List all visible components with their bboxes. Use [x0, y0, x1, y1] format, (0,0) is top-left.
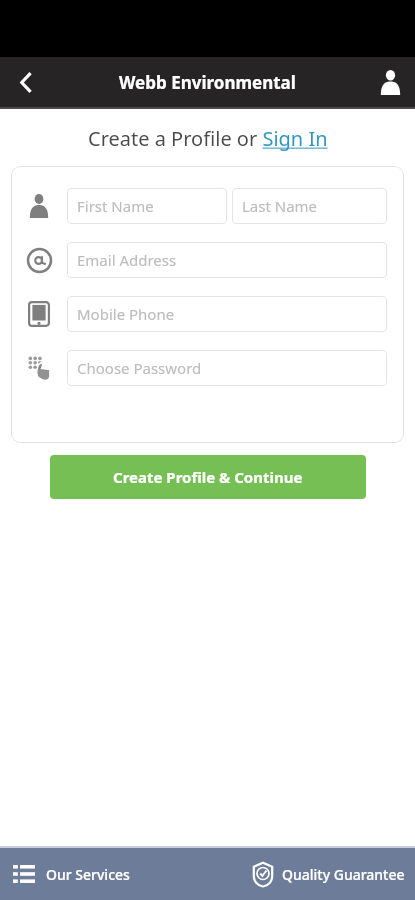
button[interactable]: Email Address — [67, 242, 387, 278]
staticText: Mobile Phone — [77, 304, 175, 324]
staticText: First Name — [77, 196, 154, 216]
button[interactable]: Our Services — [0, 848, 207, 900]
button[interactable]: First Name — [67, 188, 227, 224]
button[interactable]: Choose Password — [67, 350, 387, 386]
button[interactable]: Last Name — [232, 188, 387, 224]
button[interactable]: Quality Guarantee — [207, 848, 415, 900]
staticText: Quality Guarantee — [282, 865, 405, 884]
staticText: Last Name — [242, 196, 318, 216]
button[interactable]: Back — [0, 57, 52, 107]
button[interactable]: Create Profile & Continue — [50, 455, 366, 499]
staticText: Email Address — [77, 250, 177, 270]
button[interactable]: Create a Profile or Sign In — [88, 125, 328, 152]
button[interactable]: Mobile Phone — [67, 296, 387, 332]
other: Our Services — [13, 865, 35, 883]
other: Quality Guarantee — [253, 862, 273, 887]
staticText: Choose Password — [77, 358, 202, 378]
staticText: Create Profile & Continue — [113, 467, 303, 487]
staticText: Our Services — [46, 865, 130, 884]
staticText: Webb Environmental — [119, 71, 296, 94]
button[interactable]: Account — [365, 57, 415, 107]
